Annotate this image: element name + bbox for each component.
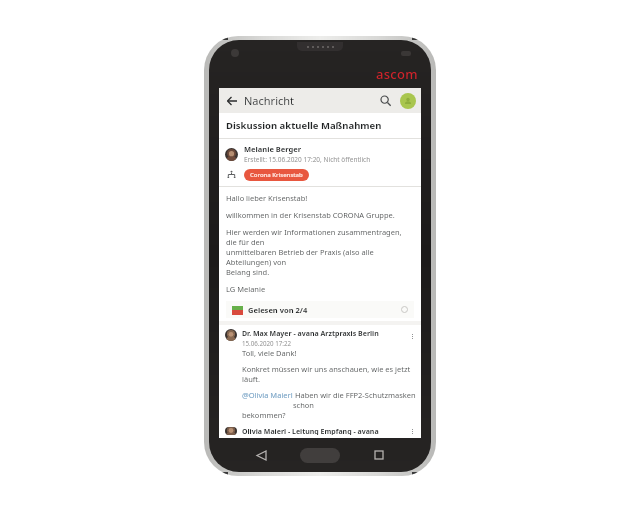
button[interactable]: Profile (400, 93, 416, 109)
staticText: 15.06.2020 17:22 (242, 339, 292, 347)
staticText: ascom (376, 65, 418, 83)
staticText: Melanie Berger (244, 144, 302, 154)
button[interactable]: Search (376, 91, 395, 110)
staticText: Hier werden wir Informationen zusammentr… (226, 227, 414, 247)
staticText: Diskussion aktuelle Maßnahmen Corona (226, 119, 414, 132)
staticText: unmittelbaren Betrieb der Praxis (also a… (226, 247, 414, 267)
staticText: Olivia Maierl - Leitung Empfang - avana … (242, 427, 407, 435)
staticText: willkommen in der Krisenstab CORONA Grup… (226, 210, 395, 220)
staticText: Corona Krisenstab (250, 171, 303, 179)
button[interactable]: Olivia Maierl - Leitung Empfang - avana … (219, 423, 421, 438)
staticText: Gelesen von 2/4 (248, 305, 308, 315)
staticText: Erstellt: 15.06.2020 17:20, Nicht öffent… (244, 155, 371, 164)
button[interactable]: More options (407, 427, 417, 435)
staticText: Belang sind. (226, 267, 270, 277)
staticText: Hallo lieber Krisenstab! (226, 193, 308, 203)
button[interactable]: Corona Krisenstab (250, 171, 303, 179)
staticText: Dr. Max Mayer - avana Arztpraxis Berlin (242, 329, 379, 339)
button[interactable]: Dr. Max Mayer - avana Arztpraxis Berlin (219, 325, 421, 423)
button[interactable]: Home (300, 448, 340, 463)
staticText: Haben wir die FFP2-Schutzmasken schon (293, 390, 417, 410)
staticText: Toll, viele Dank! (242, 348, 297, 358)
button[interactable]: Back (251, 445, 271, 465)
button[interactable]: Gelesen von 2/4 (226, 301, 414, 318)
staticText: LG Melanie (226, 284, 266, 294)
staticText: Konkret müssen wir uns anschauen, wie es… (242, 364, 417, 384)
button[interactable]: Back (222, 91, 241, 110)
button[interactable]: More options (407, 329, 417, 343)
staticText: Nachricht (244, 93, 295, 108)
staticText: bekommen? (242, 410, 286, 420)
button[interactable]: @Olivia Maierl (242, 390, 293, 400)
button[interactable]: Recent apps (369, 445, 389, 465)
